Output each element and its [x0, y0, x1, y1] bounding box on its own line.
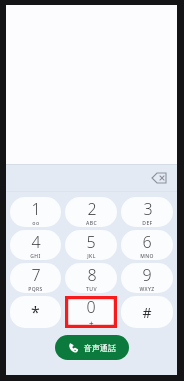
- staticText: 音声通話: [84, 343, 116, 353]
- staticText: +: [89, 318, 94, 328]
- button[interactable]: 7: [10, 263, 61, 293]
- staticText: 7: [31, 264, 41, 286]
- button[interactable]: 0: [65, 296, 117, 328]
- button[interactable]: #: [121, 296, 173, 328]
- staticText: 5: [86, 231, 96, 253]
- button[interactable]: 9: [121, 263, 173, 293]
- staticText: ᴏᴏ: [32, 220, 40, 227]
- staticText: JKL: [87, 253, 96, 260]
- button[interactable]: 1: [10, 197, 61, 227]
- staticText: ABC: [86, 220, 97, 227]
- staticText: 8: [87, 264, 97, 286]
- button[interactable]: 5: [65, 230, 117, 260]
- button[interactable]: *: [10, 296, 61, 328]
- button[interactable]: 3: [121, 197, 173, 227]
- button[interactable]: 4: [10, 230, 61, 260]
- staticText: 0: [86, 296, 96, 318]
- button[interactable]: 音声通話: [55, 335, 129, 360]
- staticText: 3: [143, 198, 153, 220]
- staticText: PQRS: [28, 286, 43, 293]
- button[interactable]: Backspace: [148, 167, 170, 189]
- staticText: #: [142, 303, 152, 322]
- staticText: DEF: [142, 220, 153, 227]
- staticText: 4: [31, 231, 41, 253]
- button[interactable]: 6: [121, 230, 173, 260]
- staticText: GHI: [30, 253, 41, 260]
- staticText: TUV: [86, 286, 97, 293]
- staticText: 2: [87, 198, 97, 220]
- staticText: 6: [142, 231, 152, 253]
- staticText: WXYZ: [139, 286, 155, 293]
- button[interactable]: 2: [65, 197, 117, 227]
- staticText: 9: [142, 264, 152, 286]
- button[interactable]: 8: [65, 263, 117, 293]
- staticText: 1: [31, 198, 41, 220]
- staticText: *: [31, 301, 40, 323]
- staticText: MNO: [140, 253, 154, 260]
